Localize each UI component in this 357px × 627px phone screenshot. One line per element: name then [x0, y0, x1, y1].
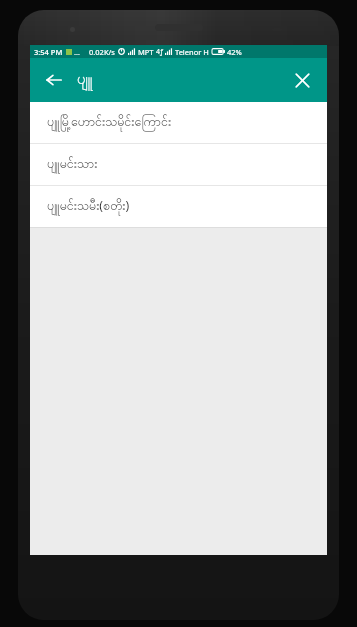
button[interactable]: ပျူမြို့ဟောင်းသမိုင်းကြောင်း: [30, 102, 327, 143]
staticText: ပျူမင်းသမီး(စတိုး): [47, 197, 130, 216]
staticText: 4ƒ: [156, 47, 163, 57]
staticText: …: [74, 47, 80, 57]
staticText: ပျူမြို့ဟောင်းသမိုင်းကြောင်း: [47, 114, 172, 132]
button[interactable]: Close: [285, 63, 319, 97]
button[interactable]: Back: [37, 63, 71, 97]
staticText: Telenor H: [175, 47, 209, 57]
staticText: ပျူမင်းသား: [47, 156, 98, 174]
staticText: 0.02K/s: [89, 47, 115, 57]
staticText: MPT: [138, 47, 154, 57]
staticText: 3:54 PM: [34, 47, 63, 57]
staticText: ပျူ: [77, 69, 285, 91]
staticText: 42%: [227, 47, 242, 57]
button[interactable]: ပျူမင်းသမီး(စတိုး): [30, 186, 327, 227]
button[interactable]: ပျူမင်းသား: [30, 144, 327, 185]
